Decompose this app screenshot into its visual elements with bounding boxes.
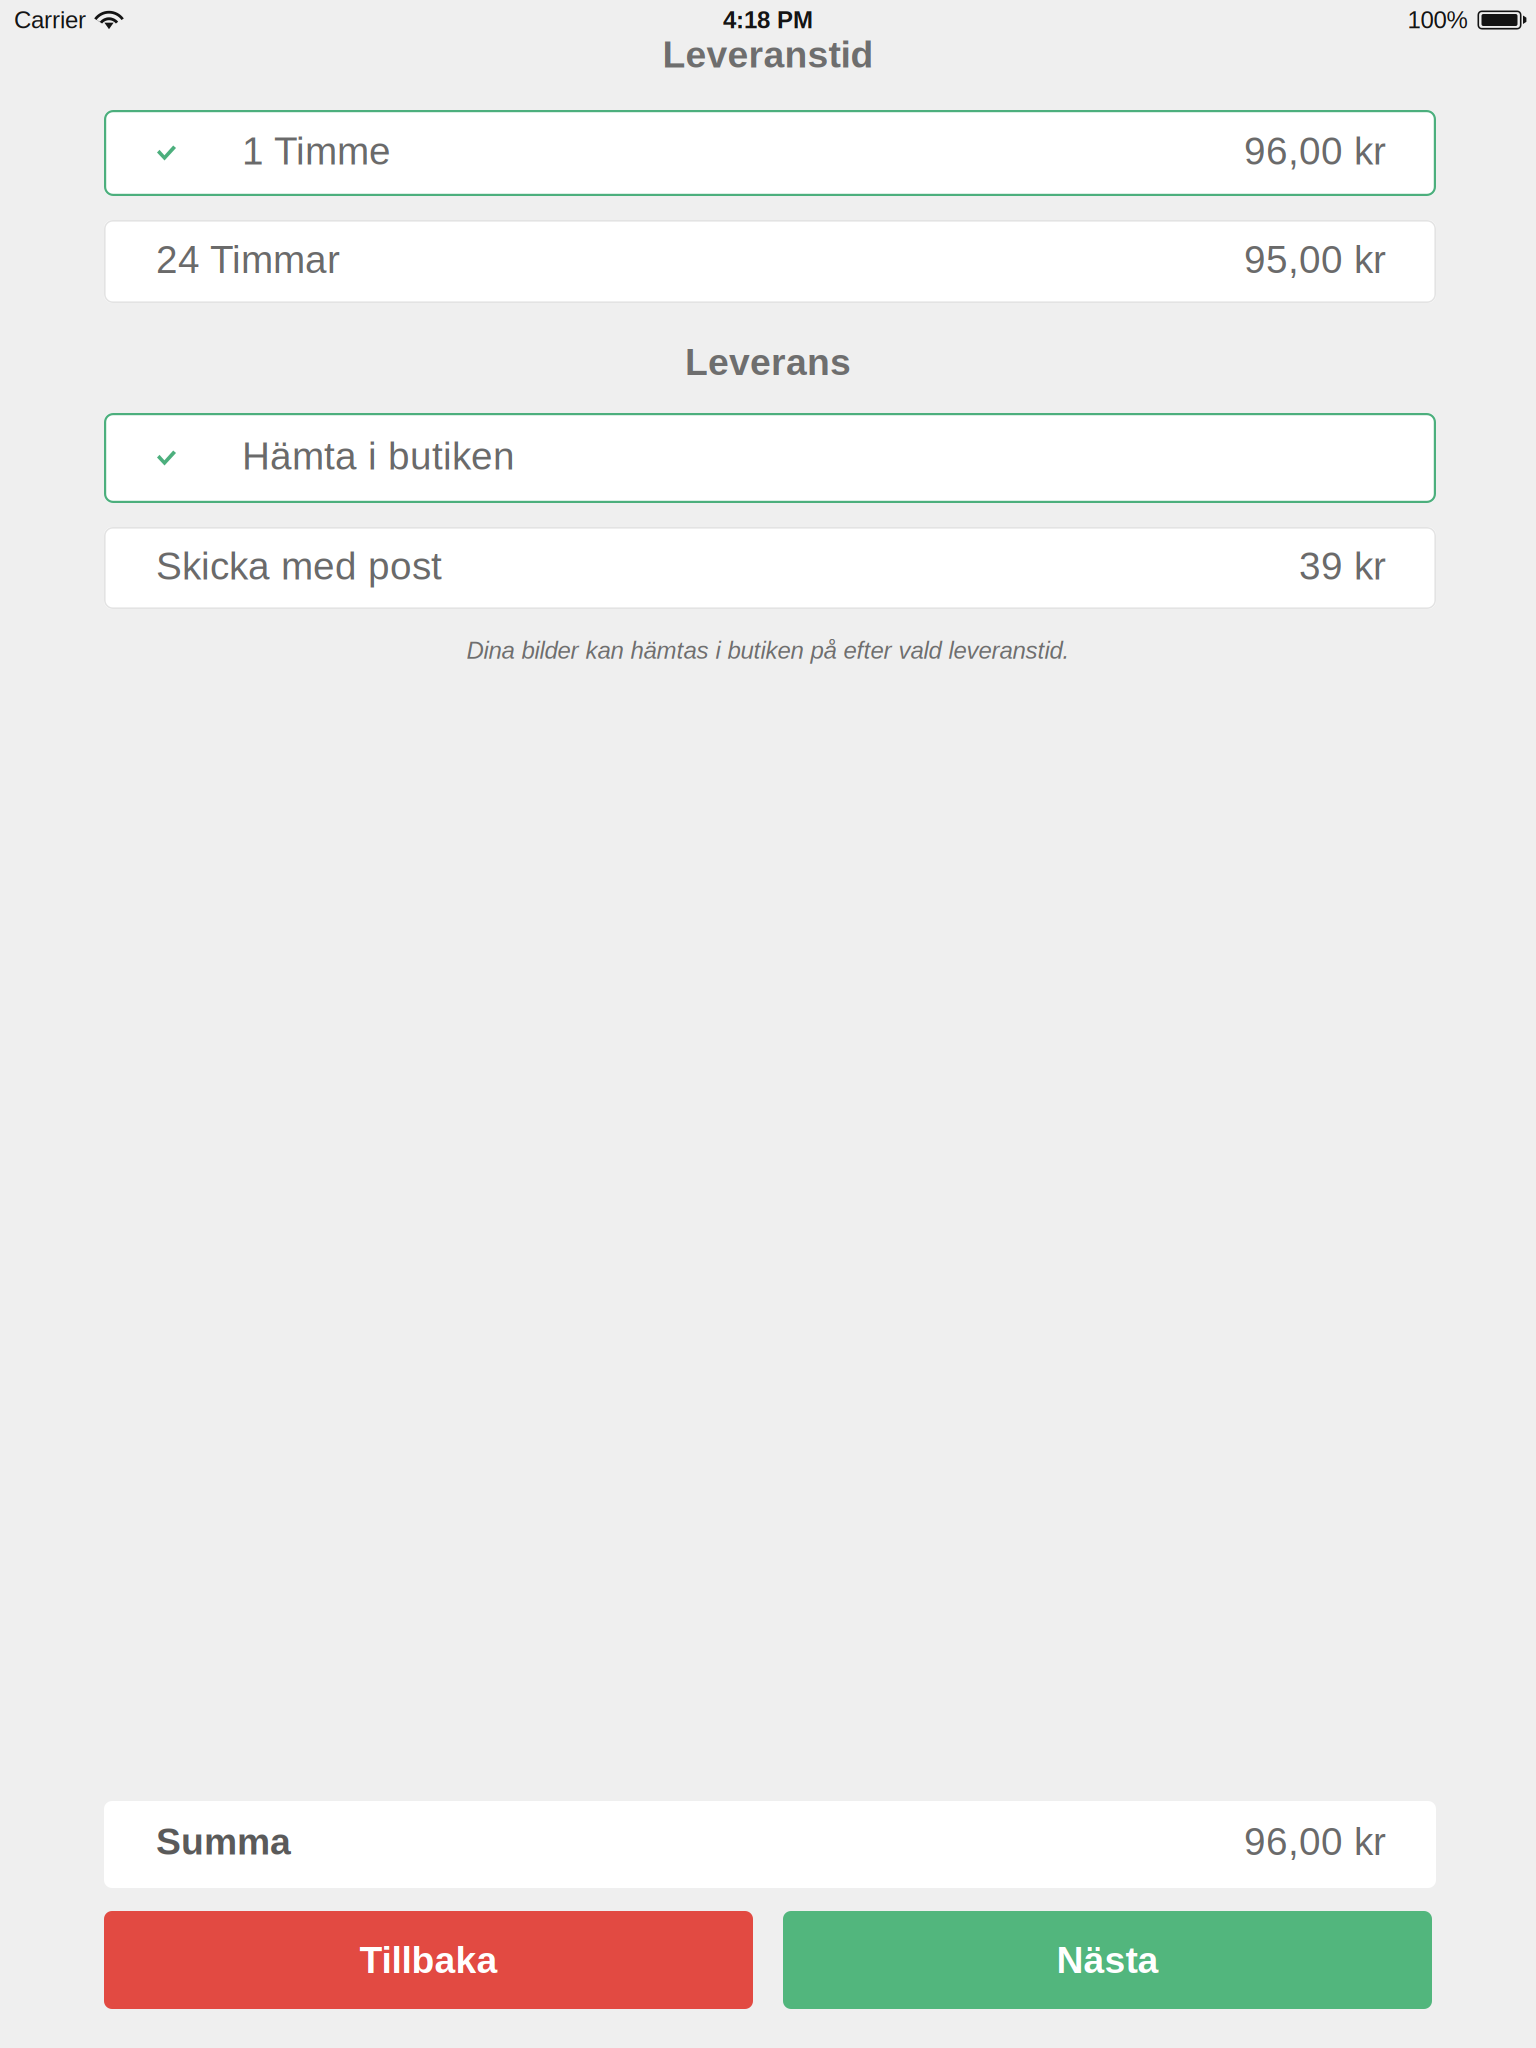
staticText: Hämta i butiken [242,434,515,478]
button[interactable]: Hämta i butiken [102,413,1434,503]
button[interactable]: Tillbaka [104,1911,753,2009]
button[interactable]: 24 Timmar [102,220,1434,303]
staticText: Summa [156,1821,291,1862]
staticText: 39 kr [1299,544,1386,588]
staticText: 24 Timmar [156,238,340,281]
staticText: 100% [1407,7,1467,33]
staticText: Tillbaka [359,1939,497,1981]
staticText: 95,00 kr [1244,238,1386,281]
staticText: Leveranstid [662,34,873,75]
staticText: Nästa [1056,1939,1158,1981]
button[interactable]: Nästa [783,1911,1432,2009]
staticText: Dina bilder kan hämtas i butiken på efte… [466,637,1069,664]
staticText: 4:18 PM [723,7,813,33]
staticText: Leverans [685,341,851,383]
staticText: Carrier [14,7,86,33]
staticText: Skicka med post [156,544,442,588]
staticText: 1 Timme [242,129,391,173]
button[interactable]: 1 Timme [102,110,1434,196]
button[interactable]: Skicka med post [102,527,1434,609]
staticText: 96,00 kr [1244,129,1386,173]
staticText: 96,00 kr [1244,1820,1386,1863]
